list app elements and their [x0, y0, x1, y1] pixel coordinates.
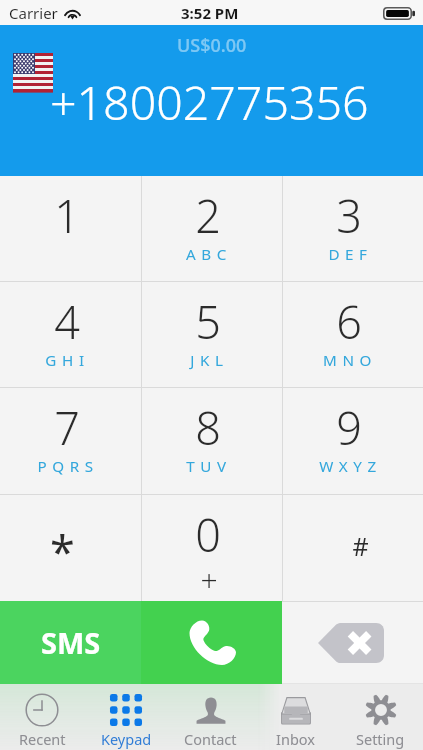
button[interactable]: 2	[142, 176, 282, 281]
staticText: +18002775356	[50, 70, 369, 133]
button[interactable]: Delete	[282, 601, 423, 684]
staticText: TUV	[186, 456, 232, 477]
staticText: GHI	[45, 350, 90, 371]
staticText: 4	[54, 291, 80, 352]
staticText: 5	[195, 291, 221, 352]
button[interactable]: 6	[283, 282, 423, 387]
button[interactable]: Recent	[0, 684, 84, 750]
staticText: #	[352, 529, 369, 563]
staticText: WXYZ	[319, 456, 382, 477]
staticText: 2	[195, 185, 221, 246]
staticText: 3	[336, 185, 362, 246]
staticText: 7	[54, 397, 80, 458]
staticText: 8	[195, 397, 221, 458]
button[interactable]: 1	[0, 176, 141, 281]
button[interactable]: Call	[141, 601, 282, 684]
staticText: PQRS	[37, 456, 99, 477]
staticText: MNO	[323, 350, 377, 371]
button[interactable]: 5	[142, 282, 282, 387]
staticText: SMS	[41, 623, 101, 662]
staticText: Setting	[356, 729, 405, 749]
button[interactable]: 8	[142, 388, 282, 494]
staticText: DEF	[328, 244, 373, 265]
button[interactable]: 0	[142, 495, 282, 601]
staticText: Keypad	[101, 729, 152, 749]
staticText: 9	[336, 397, 362, 458]
staticText: 0	[195, 504, 221, 565]
staticText: JKL	[190, 350, 229, 371]
staticText: +	[200, 559, 218, 600]
button[interactable]: Inbox	[253, 684, 338, 750]
staticText: Carrier	[9, 3, 58, 23]
button[interactable]: 4	[0, 282, 141, 387]
button[interactable]: 9	[283, 388, 423, 494]
staticText: ABC	[186, 244, 232, 265]
staticText: Contact	[184, 729, 237, 749]
staticText: 6	[336, 291, 362, 352]
button[interactable]: Setting	[338, 684, 423, 750]
staticText: 3:52 PM	[181, 3, 239, 23]
button[interactable]: 7	[0, 388, 141, 494]
button[interactable]: Contact	[168, 684, 253, 750]
staticText: US$0.00	[177, 33, 247, 58]
staticText: Recent	[19, 729, 66, 749]
button[interactable]: 3	[283, 176, 423, 281]
button[interactable]: SMS	[0, 601, 141, 684]
staticText: 1	[54, 185, 80, 246]
button[interactable]: Keypad	[84, 684, 168, 750]
staticText: *	[50, 521, 75, 582]
button[interactable]: #	[283, 495, 423, 601]
staticText: Inbox	[276, 729, 315, 749]
button[interactable]: *	[0, 495, 141, 601]
